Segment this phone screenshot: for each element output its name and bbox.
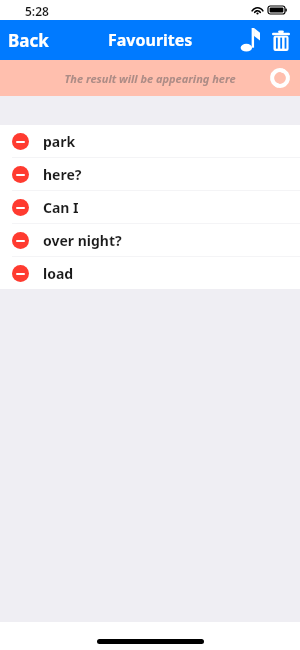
button[interactable]: Remove park — [12, 133, 29, 150]
staticText: The result will be appearing here — [64, 71, 236, 86]
button[interactable]: Remove load — [0, 257, 300, 289]
button[interactable]: Remove over night? — [12, 232, 29, 249]
button[interactable]: Play sound — [232, 22, 266, 58]
button[interactable]: Remove here? — [12, 166, 29, 183]
button[interactable]: Remove over night? — [0, 224, 300, 256]
button[interactable]: Remove here? — [0, 158, 300, 190]
button[interactable]: Back — [0, 25, 57, 56]
staticText: load — [43, 264, 74, 283]
staticText: 5:28 — [25, 3, 49, 19]
staticText: over night? — [43, 231, 122, 250]
button[interactable]: Remove park — [0, 125, 300, 157]
staticText: Back — [8, 29, 49, 52]
button[interactable]: Remove Can I — [0, 191, 300, 223]
button[interactable]: Remove load — [12, 265, 29, 282]
button[interactable]: Refresh — [264, 62, 296, 94]
staticText: Favourites — [108, 29, 193, 51]
staticText: here? — [43, 165, 82, 184]
button[interactable]: Remove Can I — [12, 199, 29, 216]
staticText: Can I — [43, 198, 79, 217]
button[interactable]: Delete all — [266, 22, 296, 58]
staticText: park — [43, 132, 76, 151]
